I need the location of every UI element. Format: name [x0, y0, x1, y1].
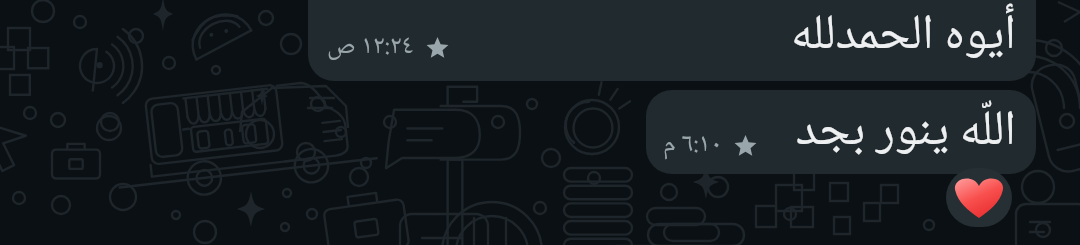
- staticText: ٦:١٠ م: [663, 123, 722, 167]
- button[interactable]: أيوه الحمدلله: [308, 0, 1036, 81]
- button[interactable]: اللّه ينور بجد: [646, 90, 1036, 174]
- staticText: ١٢:٢٤ ص: [327, 25, 414, 69]
- button[interactable]: Heart reaction: [946, 168, 1012, 227]
- staticText: أيوه الحمدلله: [791, 0, 1016, 79]
- staticText: اللّه ينور بجد: [795, 92, 1016, 174]
